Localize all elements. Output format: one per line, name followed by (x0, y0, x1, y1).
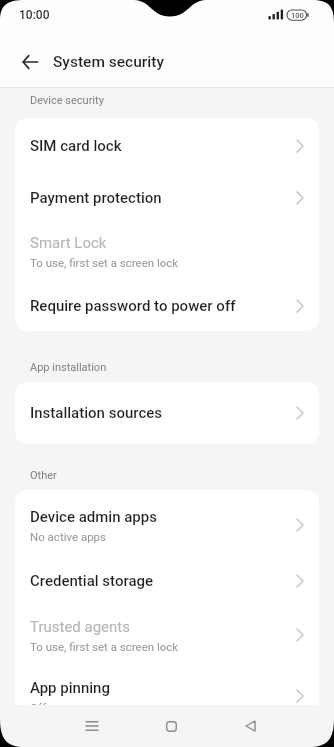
staticText: Payment protection (30, 189, 162, 207)
button[interactable]: Payment protection (15, 174, 319, 222)
button[interactable]: Smart Lock (15, 222, 319, 280)
button[interactable]: Installation sources (15, 382, 319, 444)
staticText: Credential storage (30, 572, 154, 590)
staticText: Device admin apps (30, 508, 157, 526)
button[interactable]: Require password to power off (15, 280, 319, 331)
staticText: 10:00 (19, 8, 50, 22)
staticText: Trusted agents (30, 618, 131, 636)
staticText: Device security (30, 94, 104, 107)
staticText: Off (30, 701, 46, 705)
staticText: App pinning (30, 679, 110, 697)
button[interactable] (10, 48, 50, 76)
staticText: Installation sources (30, 404, 163, 422)
staticText: To use, first set a screen lock (30, 640, 179, 653)
staticText: Other (30, 469, 57, 482)
button[interactable] (66, 705, 118, 747)
button[interactable]: Credential storage (15, 560, 319, 602)
staticText: System security (53, 53, 164, 71)
staticText: To use, first set a screen lock (30, 256, 179, 269)
staticText: Smart Lock (30, 234, 107, 252)
staticText: Require password to power off (30, 297, 236, 315)
button[interactable]: SIM card lock (15, 118, 319, 174)
button[interactable]: Device admin apps (15, 490, 319, 560)
button[interactable] (224, 705, 276, 747)
button[interactable]: Trusted agents (15, 602, 319, 668)
staticText: SIM card lock (30, 137, 122, 155)
button[interactable] (145, 705, 197, 747)
staticText: 100 (291, 11, 304, 20)
staticText: App installation (30, 361, 107, 374)
button[interactable]: App pinning (15, 668, 319, 705)
staticText: No active apps (30, 530, 107, 543)
